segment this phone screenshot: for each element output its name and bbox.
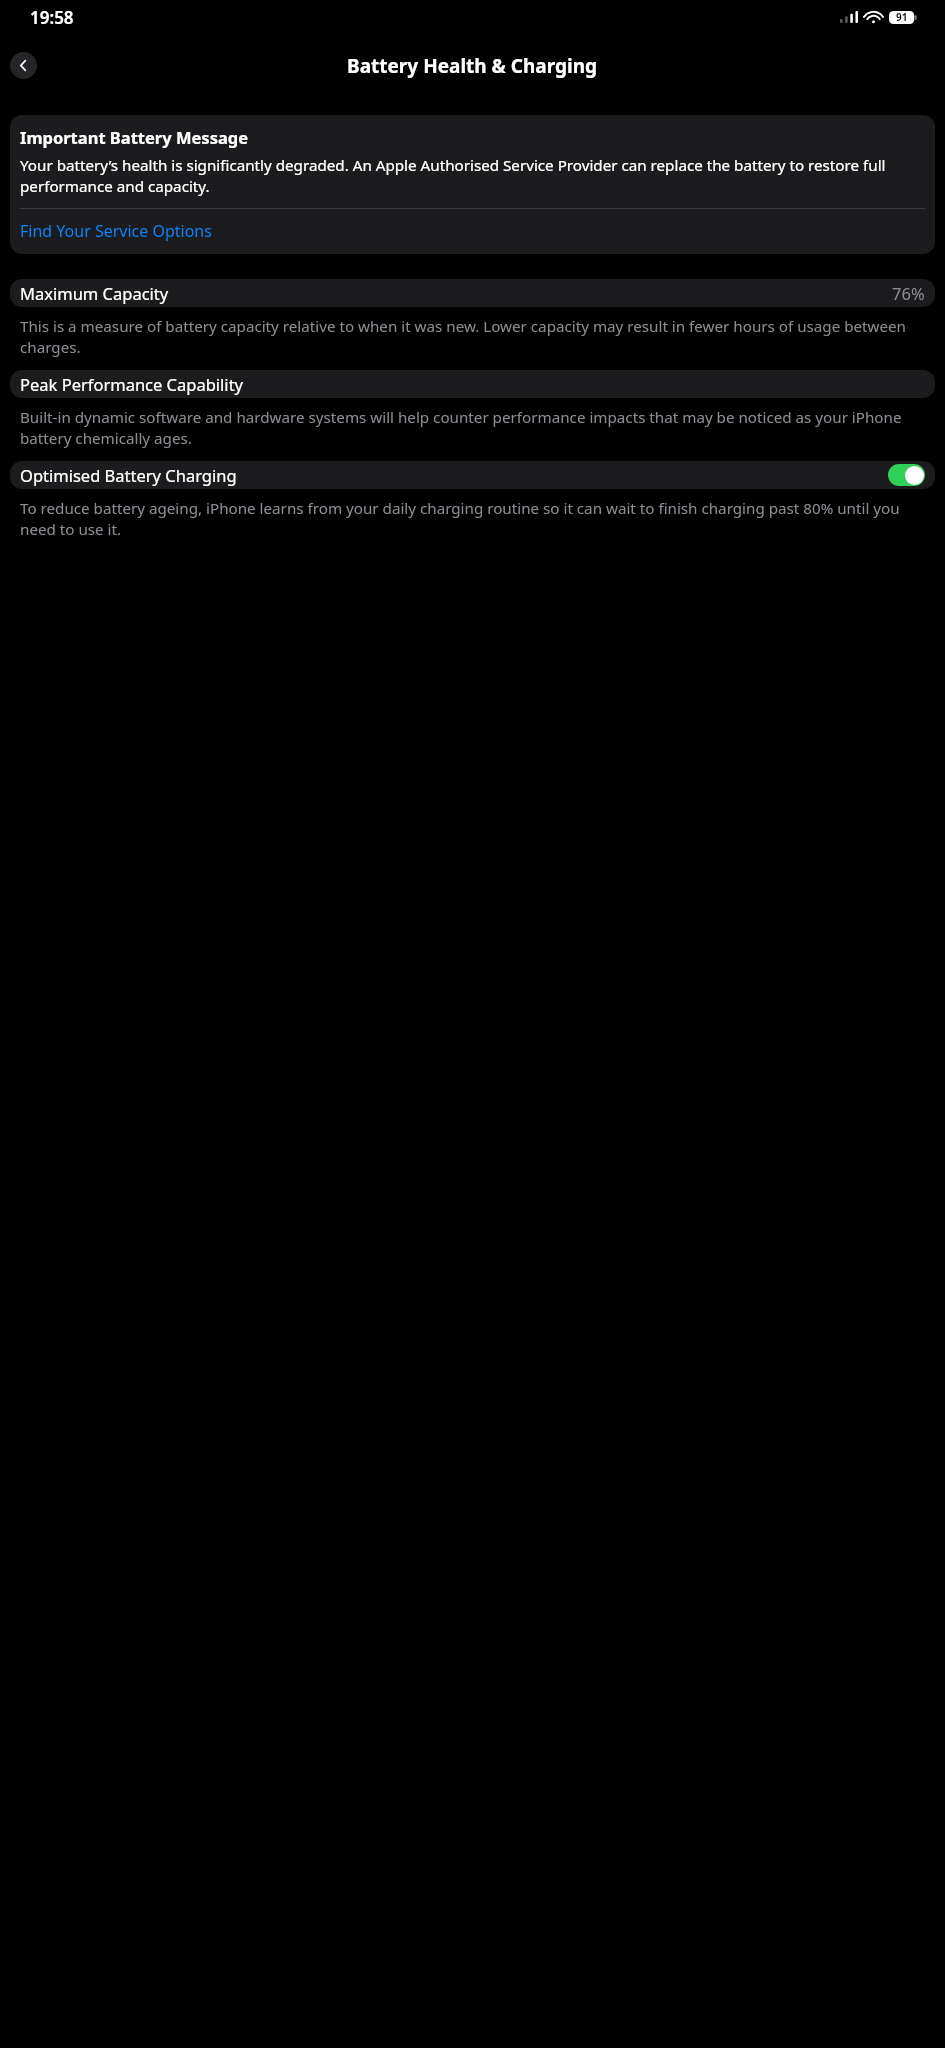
staticText: This is a measure of battery capacity re… (20, 316, 931, 358)
staticText: To reduce battery ageing, iPhone learns … (20, 498, 931, 540)
staticText: Built-in dynamic software and hardware s… (20, 407, 931, 449)
staticText: 76% (892, 282, 925, 304)
staticText: Your battery’s health is significantly d… (20, 155, 925, 197)
button[interactable]: Optimised Battery Charging (10, 461, 935, 489)
button[interactable]: Optimised Battery Charging toggle, on (888, 464, 925, 486)
button[interactable]: Peak Performance Capability (10, 370, 935, 398)
staticText: 19:58 (30, 6, 74, 29)
button[interactable]: Back (10, 52, 37, 79)
staticText: Peak Performance Capability (20, 373, 925, 395)
staticText: Maximum Capacity (20, 282, 892, 304)
staticText: Find Your Service Options (20, 220, 212, 242)
button[interactable]: Maximum Capacity (10, 279, 935, 307)
staticText: Battery Health & Charging (347, 53, 598, 79)
staticText: Optimised Battery Charging (20, 464, 888, 486)
button[interactable]: Important Battery Message (10, 115, 935, 254)
staticText: Important Battery Message (20, 126, 249, 148)
button[interactable]: Find Your Service Options (20, 209, 925, 254)
staticText: 91 (896, 10, 908, 24)
